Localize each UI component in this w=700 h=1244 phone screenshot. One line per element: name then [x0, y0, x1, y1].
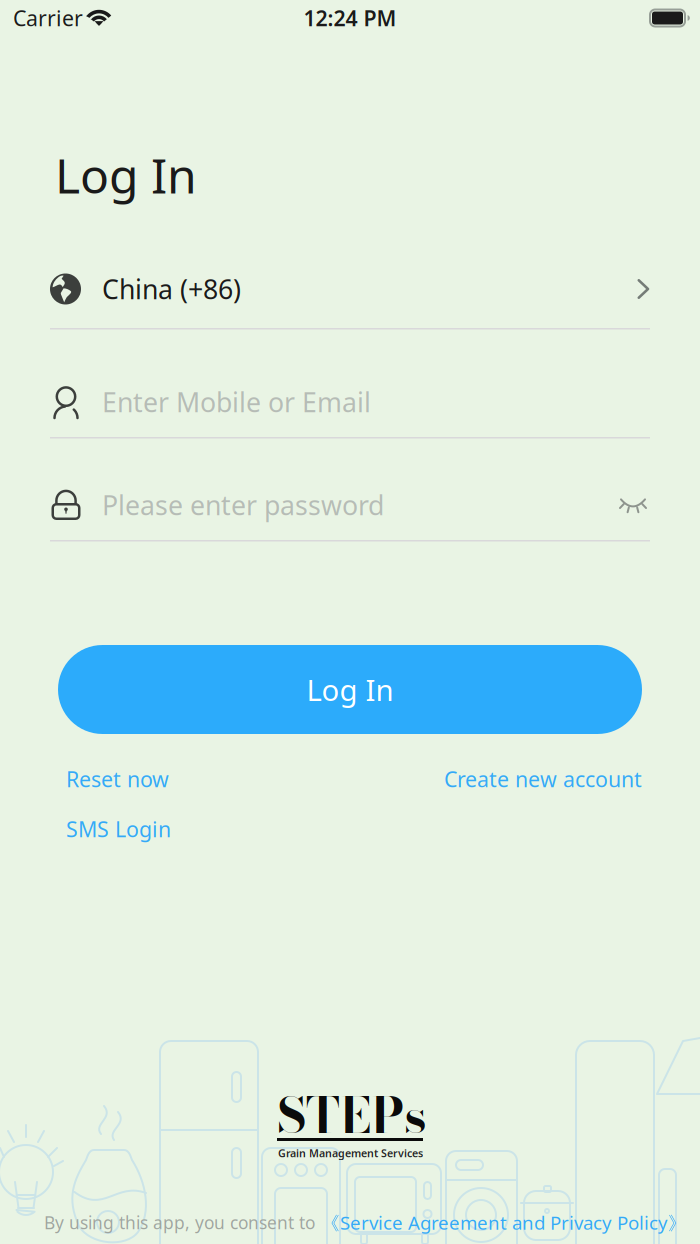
staticText: SMS Login [66, 815, 171, 843]
staticText: Enter Mobile or Email [102, 384, 371, 420]
button[interactable]: Reset now [66, 764, 169, 794]
button[interactable]: China (+86) [0, 260, 700, 318]
button[interactable]: 《Service Agreement and Privacy Policy》 [321, 1210, 687, 1235]
button[interactable]: Create new account [444, 764, 642, 794]
staticText: Create new account [444, 765, 642, 793]
staticText: 12:24 PM [303, 4, 396, 32]
staticText: Reset now [66, 765, 169, 793]
staticText: 《Service Agreement and Privacy Policy》 [321, 1210, 687, 1235]
staticText: Log In [306, 670, 393, 709]
staticText: Please enter password [102, 487, 384, 523]
staticText: China (+86) [102, 271, 241, 307]
button[interactable]: SMS Login [66, 814, 171, 844]
staticText: STEPs [277, 1077, 426, 1153]
staticText: Log In [55, 143, 197, 207]
staticText: Carrier [13, 4, 83, 32]
button[interactable]: Log In [58, 645, 642, 734]
button[interactable]: Show password [616, 488, 650, 522]
staticText: By using this app, you consent to [44, 1211, 315, 1234]
staticText: Grain Management Services [278, 1146, 423, 1160]
